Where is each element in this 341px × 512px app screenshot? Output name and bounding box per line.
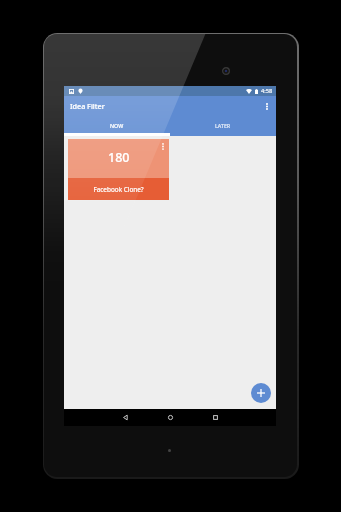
button[interactable]: 180 (68, 139, 169, 200)
staticText: NOW (110, 122, 124, 129)
button[interactable]: Card options (162, 143, 164, 150)
button[interactable]: Home (163, 409, 178, 426)
staticText: Facebook Clone? (93, 185, 144, 194)
staticText: LATER (215, 122, 231, 129)
staticText: 4:58 (261, 87, 273, 95)
staticText: 180 (108, 149, 130, 166)
button[interactable]: LATER (170, 116, 276, 136)
button[interactable]: Back (118, 409, 133, 426)
staticText: Idea Filter (70, 101, 105, 111)
button[interactable]: More options (259, 96, 275, 116)
button[interactable]: NOW (64, 116, 170, 136)
button[interactable]: Recent apps (208, 409, 223, 426)
button[interactable]: Add (251, 383, 271, 403)
